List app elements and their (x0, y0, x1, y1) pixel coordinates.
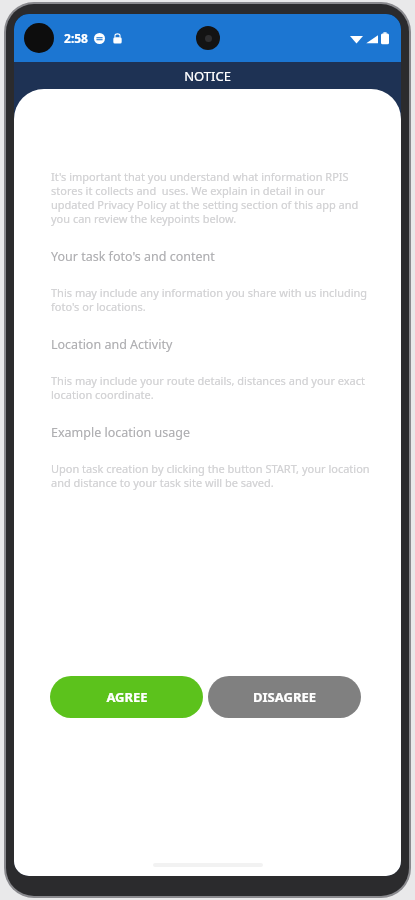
button[interactable]: DISAGREE (208, 676, 361, 718)
staticText: It's important that you understand what … (51, 169, 371, 226)
staticText: 2:58 (64, 30, 88, 46)
staticText: NOTICE (184, 67, 231, 85)
button[interactable]: AGREE (50, 676, 203, 718)
staticText: This may include any information you sha… (51, 285, 371, 314)
staticText: Upon task creation by clicking the butto… (51, 461, 371, 490)
staticText: Location and Activity (51, 336, 173, 353)
staticText: This may include your route details, dis… (51, 373, 371, 402)
staticText: AGREE (106, 688, 148, 706)
staticText: Example location usage (51, 424, 191, 441)
staticText: Your task foto's and content (51, 248, 215, 265)
staticText: DISAGREE (253, 688, 316, 706)
